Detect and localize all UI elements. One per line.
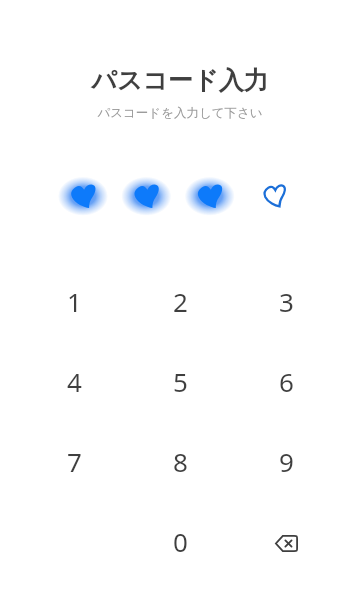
- button[interactable]: 2: [146, 267, 214, 335]
- button[interactable]: 9: [252, 427, 320, 495]
- button[interactable]: 8: [146, 427, 214, 495]
- staticText: パスコード入力: [91, 65, 269, 96]
- staticText: 5: [173, 364, 188, 399]
- button[interactable]: 0: [146, 507, 214, 575]
- staticText: 1: [67, 284, 82, 319]
- staticText: 4: [67, 364, 82, 399]
- button[interactable]: 6: [252, 347, 320, 415]
- button[interactable]: 1: [40, 267, 108, 335]
- button[interactable]: Backspace: [252, 509, 320, 577]
- staticText: 6: [279, 364, 294, 399]
- staticText: 9: [279, 444, 294, 479]
- staticText: 8: [173, 444, 188, 479]
- staticText: 3: [279, 284, 294, 319]
- staticText: 0: [173, 524, 188, 559]
- button[interactable]: 7: [40, 427, 108, 495]
- staticText: パスコードを入力して下さい: [97, 105, 263, 121]
- staticText: 2: [173, 284, 188, 319]
- staticText: 7: [67, 444, 82, 479]
- button[interactable]: 4: [40, 347, 108, 415]
- button[interactable]: 3: [252, 267, 320, 335]
- button[interactable]: 5: [146, 347, 214, 415]
